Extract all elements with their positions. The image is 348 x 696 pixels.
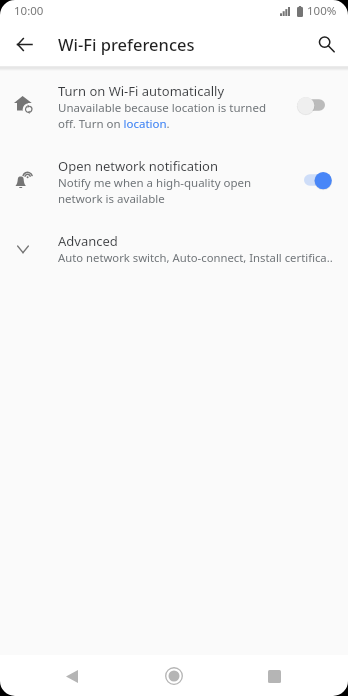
button[interactable]: Navigate up <box>6 26 42 62</box>
button[interactable]: Turn on Wi-Fi automatically <box>0 76 348 151</box>
button[interactable]: On <box>296 165 338 195</box>
button[interactable]: Off <box>296 90 338 120</box>
staticText: Notify me when a high-quality open netwo… <box>58 175 276 206</box>
staticText: Open network notification <box>58 157 218 175</box>
staticText: Turn on Wi-Fi automatically <box>58 82 225 100</box>
staticText: Unavailable because location is turned o… <box>58 100 276 131</box>
button[interactable]: Back <box>52 656 92 696</box>
staticText: Auto network switch, Auto-connect, Insta… <box>58 250 333 265</box>
button[interactable]: Advanced <box>0 226 348 286</box>
button[interactable]: Recent apps <box>254 656 294 696</box>
button[interactable]: Search <box>308 26 344 62</box>
staticText: Wi-Fi preferences <box>58 33 195 55</box>
button[interactable]: Open network notification <box>0 151 348 226</box>
button[interactable]: Home <box>154 656 194 696</box>
staticText: 100% <box>307 3 337 19</box>
staticText: Advanced <box>58 232 118 250</box>
staticText: 10:00 <box>14 3 44 19</box>
